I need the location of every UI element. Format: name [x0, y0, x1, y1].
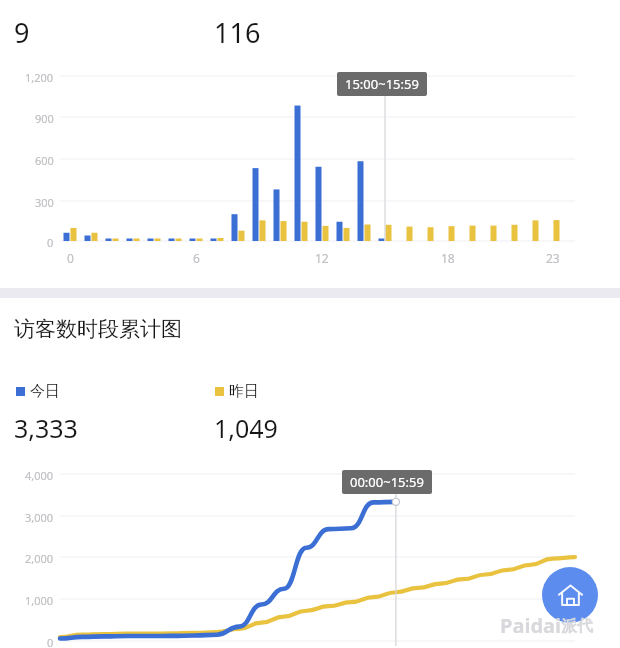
- staticText: 1,000: [25, 593, 54, 608]
- staticText: 昨日: [229, 382, 259, 401]
- staticText: 23: [546, 250, 560, 266]
- staticText: 访客数时段累计图: [14, 316, 182, 342]
- staticText: 15:00~15:59: [345, 75, 419, 93]
- staticText: 2,000: [25, 551, 54, 566]
- staticText: 3,000: [25, 510, 54, 525]
- button[interactable]: Home: [542, 567, 598, 623]
- staticText: 0: [67, 250, 74, 266]
- staticText: 12: [315, 250, 329, 266]
- staticText: 3,333: [14, 411, 78, 445]
- staticText: Paidai: [500, 612, 561, 639]
- staticText: 600: [35, 153, 54, 168]
- staticText: 1,200: [25, 70, 54, 85]
- staticText: 派代: [561, 616, 593, 636]
- staticText: 0: [47, 635, 54, 648]
- staticText: 0: [47, 235, 54, 250]
- staticText: 18: [441, 250, 455, 266]
- staticText: 116: [214, 14, 261, 51]
- staticText: 1,049: [214, 411, 278, 445]
- staticText: 6: [193, 250, 200, 266]
- button[interactable]: 15:00~15:59: [345, 75, 419, 93]
- staticText: 9: [14, 14, 30, 51]
- staticText: 900: [35, 111, 54, 126]
- staticText: 00:00~15:59: [350, 473, 424, 491]
- staticText: 今日: [30, 382, 60, 401]
- button[interactable]: 00:00~15:59: [350, 473, 424, 491]
- staticText: 4,000: [25, 468, 54, 483]
- staticText: 300: [35, 195, 54, 210]
